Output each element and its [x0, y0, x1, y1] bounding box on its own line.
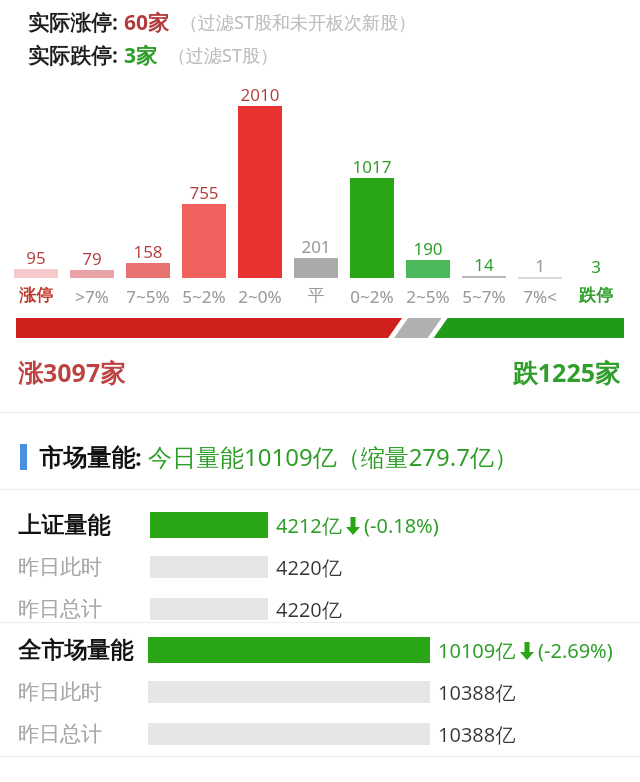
staticText: 3 — [570, 255, 622, 278]
staticText: （过滤ST股和未开板次新股） — [180, 10, 416, 35]
staticText: 昨日总计 — [18, 721, 102, 747]
button[interactable]: 昨日此时 — [0, 674, 640, 710]
staticText: (-2.69%) — [538, 637, 613, 664]
staticText: (-0.18%) — [364, 512, 439, 539]
staticText: 7~5% — [120, 285, 176, 308]
staticText: 全市场量能 — [18, 636, 133, 665]
staticText: 上证量能 — [18, 511, 110, 540]
staticText: 涨停 — [8, 285, 64, 306]
staticText: 95 — [10, 246, 62, 269]
staticText: 158 — [122, 240, 174, 263]
staticText: 755 — [178, 181, 230, 204]
staticText: 0~2% — [344, 285, 400, 308]
button[interactable]: 涨跌家数比例 — [16, 318, 624, 338]
staticText: 2~0% — [232, 285, 288, 308]
staticText: 实际涨停: — [28, 8, 124, 37]
staticText: 4220亿 — [276, 554, 342, 581]
staticText: 10109亿 — [438, 637, 516, 664]
staticText: 1017 — [346, 155, 398, 178]
staticText: >7% — [64, 285, 120, 308]
staticText: 201 — [290, 235, 342, 258]
button[interactable]: 全市场量能 — [0, 630, 640, 670]
button[interactable]: 昨日总计 — [0, 716, 640, 752]
staticText: 今日量能10109亿（缩量279.7亿） — [148, 440, 518, 473]
staticText: 平 — [288, 285, 344, 306]
staticText: 10388亿 — [438, 721, 516, 748]
staticText: 昨日此时 — [18, 554, 102, 580]
staticText: 1 — [514, 254, 566, 277]
staticText: 5~7% — [456, 285, 512, 308]
staticText: 3家 — [124, 41, 158, 70]
button[interactable]: >7% — [64, 285, 120, 308]
staticText: 4220亿 — [276, 596, 342, 623]
button[interactable]: 涨停 — [8, 285, 64, 306]
button[interactable]: 市场量能: — [20, 440, 518, 473]
staticText: 14 — [458, 253, 510, 276]
staticText: 4212亿 — [276, 512, 342, 539]
staticText: 2~5% — [400, 285, 456, 308]
button[interactable]: 2~0% — [232, 285, 288, 308]
staticText: 实际跌停: — [28, 41, 124, 70]
button[interactable]: 5~2% — [176, 285, 232, 308]
button[interactable]: 上证量能 — [0, 505, 640, 545]
staticText: 10388亿 — [438, 679, 516, 706]
staticText: 跌1225家 — [380, 355, 620, 389]
staticText: 跌停 — [568, 285, 624, 306]
staticText: 190 — [402, 237, 454, 260]
button[interactable]: 7%< — [512, 285, 568, 308]
button[interactable]: 0~2% — [344, 285, 400, 308]
button[interactable]: 2~5% — [400, 285, 456, 308]
staticText: 60家 — [124, 8, 170, 37]
button[interactable]: 7~5% — [120, 285, 176, 308]
button[interactable]: 5~7% — [456, 285, 512, 308]
button[interactable]: 跌停 — [568, 285, 624, 306]
staticText: 涨3097家 — [18, 355, 126, 389]
button[interactable]: 平 — [288, 285, 344, 306]
button[interactable]: 昨日总计 — [0, 591, 640, 627]
staticText: 79 — [66, 247, 118, 270]
staticText: 市场量能: — [39, 440, 148, 473]
staticText: （过滤ST股） — [168, 43, 278, 68]
staticText: 昨日总计 — [18, 596, 102, 622]
staticText: 2010 — [234, 83, 286, 106]
staticText: 7%< — [512, 285, 568, 308]
staticText: 昨日此时 — [18, 679, 102, 705]
button[interactable]: 昨日此时 — [0, 549, 640, 585]
staticText: 5~2% — [176, 285, 232, 308]
